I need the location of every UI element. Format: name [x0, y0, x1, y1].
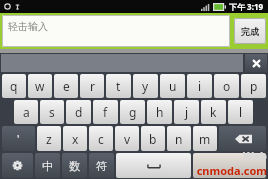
- button[interactable]: 数: [62, 153, 87, 178]
- button[interactable]: Key: [116, 153, 191, 178]
- button[interactable]: c: [89, 126, 113, 151]
- staticText: j: [185, 104, 189, 120]
- button[interactable]: w: [28, 74, 52, 98]
- button[interactable]: Settings: [2, 153, 33, 178]
- staticText: c: [98, 131, 104, 147]
- staticText: q: [10, 78, 18, 94]
- staticText: o: [223, 78, 231, 94]
- staticText: t: [116, 78, 121, 94]
- staticText: Web: [243, 148, 267, 163]
- staticText: cnmoda.com: [196, 163, 267, 178]
- button[interactable]: n: [167, 126, 191, 151]
- staticText: 中: [42, 159, 53, 173]
- button[interactable]: b: [141, 126, 165, 151]
- staticText: v: [124, 131, 131, 147]
- button[interactable]: k: [201, 100, 226, 124]
- button[interactable]: u: [160, 74, 185, 98]
- button[interactable]: e: [54, 74, 78, 98]
- staticText: e: [63, 78, 70, 94]
- button[interactable]: a: [14, 100, 38, 124]
- button[interactable]: d: [66, 100, 91, 124]
- button[interactable]: s: [40, 100, 64, 124]
- button[interactable]: f: [93, 100, 118, 124]
- staticText: 完成: [241, 26, 259, 37]
- button[interactable]: y: [133, 74, 158, 98]
- staticText: d: [75, 104, 83, 120]
- staticText: f: [103, 104, 108, 120]
- staticText: u: [169, 78, 177, 94]
- staticText: z: [46, 131, 52, 147]
- staticText: s: [49, 104, 55, 120]
- staticText: ': [17, 131, 20, 146]
- button[interactable]: r: [80, 74, 104, 98]
- staticText: 轻击输入: [8, 20, 48, 33]
- button[interactable]: x: [63, 126, 87, 151]
- staticText: n: [175, 131, 183, 147]
- staticText: r: [90, 78, 95, 94]
- button[interactable]: 中: [35, 153, 60, 178]
- button[interactable]: Shift: [2, 126, 35, 151]
- staticText: h: [156, 104, 164, 120]
- button[interactable]: o: [214, 74, 239, 98]
- staticText: y: [142, 78, 149, 94]
- button[interactable]: t: [106, 74, 131, 98]
- button[interactable]: g: [120, 100, 145, 124]
- staticText: l: [239, 104, 243, 120]
- staticText: 符: [96, 159, 107, 173]
- button[interactable]: Backspace: [219, 126, 266, 151]
- button[interactable]: 完成: [234, 18, 266, 44]
- staticText: g: [129, 104, 137, 120]
- staticText: a: [23, 104, 30, 120]
- button[interactable]: v: [115, 126, 139, 151]
- staticText: b: [149, 131, 157, 147]
- staticText: m: [199, 131, 211, 147]
- button[interactable]: p: [241, 74, 266, 98]
- staticText: p: [250, 78, 258, 94]
- staticText: k: [210, 104, 217, 120]
- staticText: 下午 3:19: [229, 1, 264, 12]
- staticText: x: [72, 131, 79, 147]
- staticText: i: [198, 78, 202, 94]
- staticText: w: [35, 78, 45, 94]
- button[interactable]: 符: [89, 153, 114, 178]
- button[interactable]: q: [2, 74, 26, 98]
- button[interactable]: l: [228, 100, 253, 124]
- button[interactable]: m: [193, 126, 217, 151]
- button[interactable]: Close keyboard: [245, 54, 267, 72]
- button[interactable]: z: [37, 126, 61, 151]
- button[interactable]: j: [174, 100, 199, 124]
- button[interactable]: i: [187, 74, 212, 98]
- staticText: 数: [69, 159, 80, 173]
- button[interactable]: Enter: [193, 153, 266, 178]
- button[interactable]: h: [147, 100, 172, 124]
- button[interactable]: 轻击输入: [2, 15, 230, 47]
